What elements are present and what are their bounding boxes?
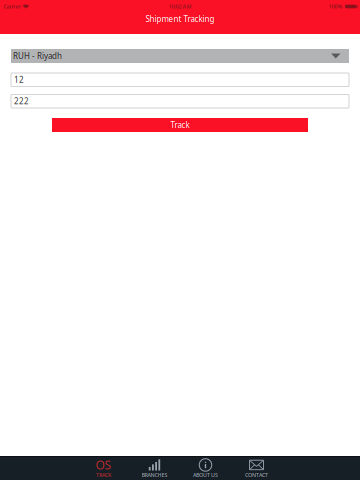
button[interactable]: BRANCHES — [129, 457, 180, 480]
staticText: TRACK — [96, 471, 111, 479]
staticText: OS — [95, 457, 111, 473]
staticText: 12 — [14, 74, 24, 85]
button[interactable]: CONTACT — [231, 457, 282, 480]
staticText: 100% — [329, 3, 343, 10]
button[interactable]: OS — [78, 457, 129, 480]
staticText: ABOUT US — [193, 471, 218, 479]
staticText: RUH - Riyadh — [13, 51, 62, 61]
staticText: Shipment Tracking — [145, 14, 214, 24]
staticText: BRANCHES — [141, 471, 167, 479]
staticText: Carrier — [3, 3, 20, 10]
button[interactable]: ABOUT US — [180, 457, 231, 480]
staticText: Track — [170, 120, 189, 130]
staticText: 222 — [14, 96, 29, 106]
staticText: 10:02 AM — [168, 3, 191, 10]
button[interactable]: Track — [52, 118, 308, 132]
staticText: CONTACT — [245, 471, 268, 479]
button[interactable]: RUH - Riyadh — [11, 49, 349, 63]
